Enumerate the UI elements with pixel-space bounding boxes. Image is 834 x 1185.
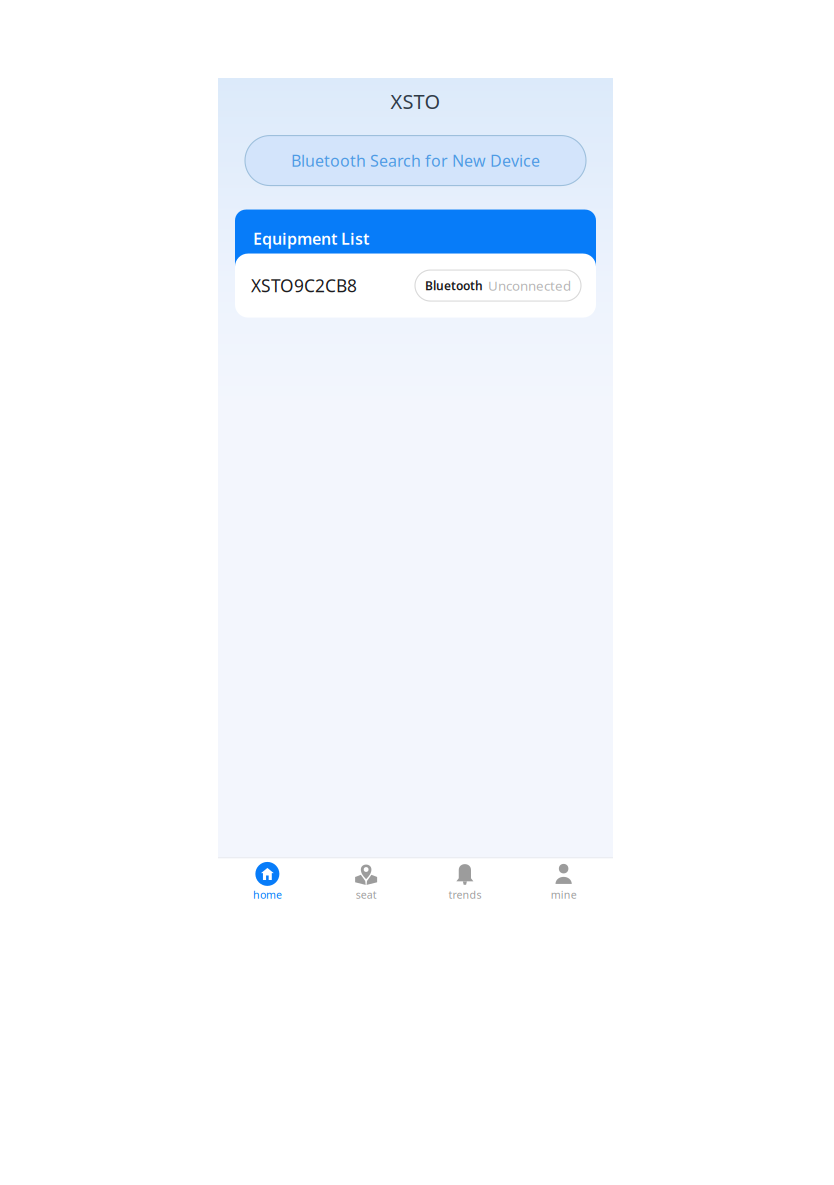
- staticText: XSTO: [390, 88, 440, 115]
- staticText: trends: [448, 887, 481, 902]
- button[interactable]: seat: [317, 858, 416, 909]
- staticText: XSTO9C2CB8: [251, 274, 357, 297]
- staticText: Bluetooth Search for New Device: [291, 150, 540, 171]
- button[interactable]: Bluetooth Search for New Device: [245, 136, 586, 186]
- button[interactable]: mine: [514, 858, 613, 909]
- button[interactable]: trends: [415, 858, 514, 909]
- staticText: Equipment List: [253, 228, 369, 249]
- staticText: home: [253, 887, 282, 902]
- staticText: Unconnected: [488, 277, 571, 294]
- staticText: mine: [551, 887, 577, 902]
- button[interactable]: home: [218, 858, 317, 909]
- staticText: seat: [356, 887, 377, 902]
- staticText: Bluetooth: [425, 278, 483, 293]
